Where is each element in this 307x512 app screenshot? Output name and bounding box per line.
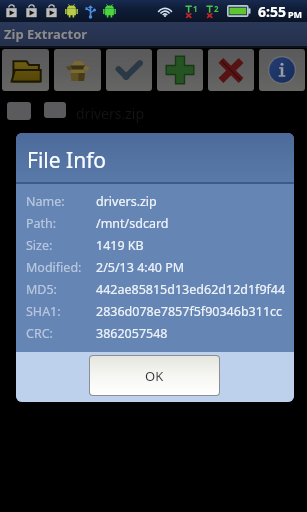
staticText: MD5: bbox=[26, 281, 57, 298]
staticText: 2836d078e7857f5f90346b311cc bbox=[96, 303, 283, 320]
staticText: PM bbox=[288, 8, 303, 20]
staticText: File Info bbox=[27, 146, 107, 175]
staticText: /mnt/sdcard bbox=[96, 215, 169, 232]
button[interactable]: Add files bbox=[157, 49, 203, 91]
button[interactable]: Delete bbox=[208, 49, 254, 91]
staticText: 2 bbox=[214, 3, 219, 14]
button[interactable]: Select all bbox=[106, 49, 152, 91]
button[interactable]: OK bbox=[90, 356, 219, 395]
staticText: 3862057548 bbox=[96, 325, 168, 342]
staticText: 1 bbox=[193, 3, 198, 14]
staticText: Size: bbox=[26, 237, 53, 254]
staticText: Path: bbox=[26, 215, 57, 232]
staticText: drivers.zip bbox=[76, 104, 145, 123]
staticText: Modified: bbox=[26, 259, 82, 276]
button[interactable]: File info bbox=[259, 49, 305, 91]
staticText: 442ae85815d13ed62d12d1f9f44 bbox=[96, 281, 286, 298]
staticText: CRC: bbox=[26, 325, 53, 342]
staticText: Zip Extractor bbox=[4, 25, 88, 43]
staticText: drivers.zip bbox=[96, 193, 157, 210]
staticText: 2/5/13 4:40 PM bbox=[96, 259, 185, 276]
staticText: Name: bbox=[26, 193, 65, 210]
staticText: 1419 KB bbox=[96, 237, 144, 254]
staticText: 6:55 bbox=[258, 2, 286, 21]
button[interactable]: Extract archive bbox=[54, 49, 101, 91]
staticText: SHA1: bbox=[26, 303, 61, 320]
button[interactable]: Open folder bbox=[2, 49, 49, 91]
staticText: OK bbox=[145, 367, 164, 385]
